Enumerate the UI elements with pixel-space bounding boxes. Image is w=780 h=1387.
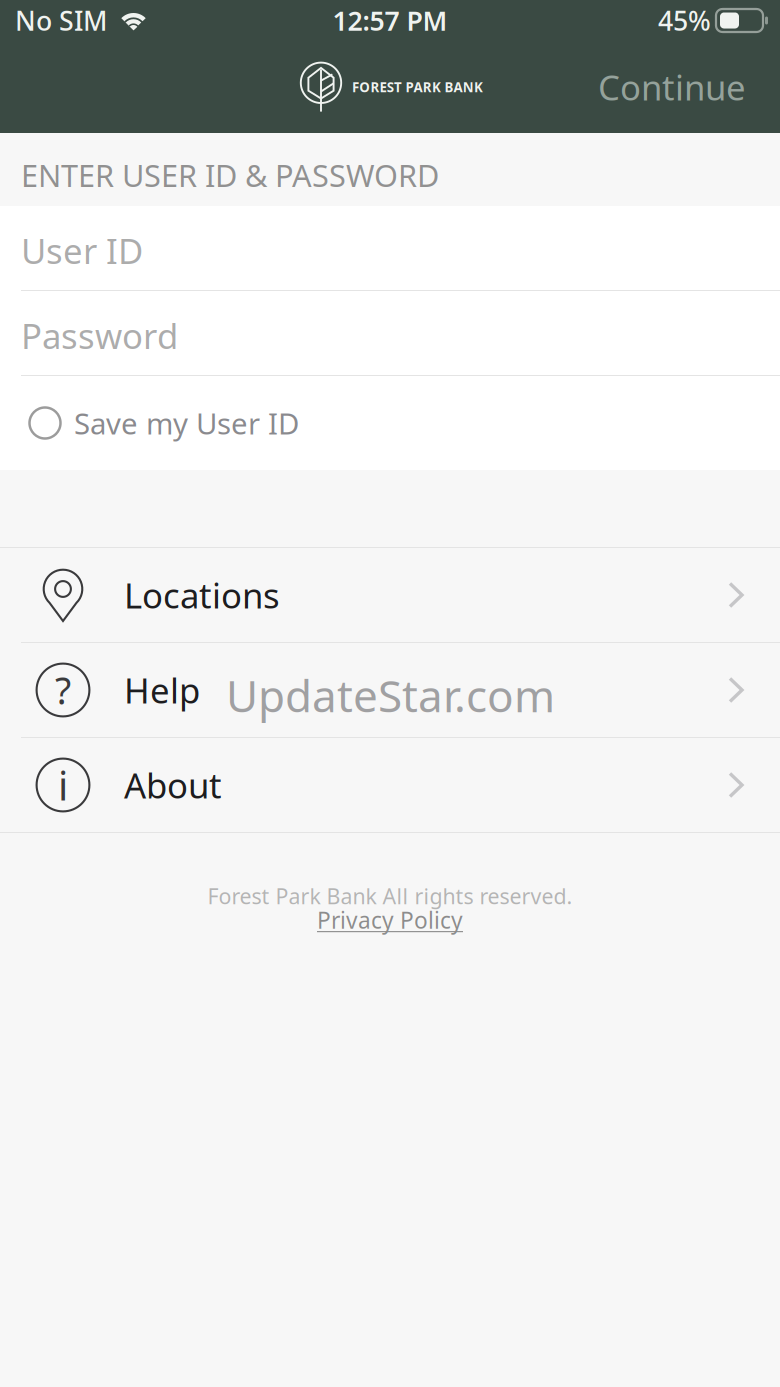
button[interactable]: i [0, 738, 780, 832]
button[interactable]: Privacy Policy [307, 906, 473, 934]
button[interactable]: Continue [572, 41, 780, 133]
staticText: Privacy Policy [317, 905, 463, 935]
staticText: About [124, 762, 222, 808]
button[interactable]: Locations [0, 548, 780, 642]
staticText: ? [55, 665, 71, 715]
staticText: FOREST PARK BANK [352, 78, 483, 96]
staticText: User ID [21, 227, 143, 273]
staticText: i [58, 758, 68, 811]
button[interactable]: Password [0, 291, 780, 375]
staticText: Locations [124, 572, 280, 618]
staticText: UpdateStar.com [226, 666, 555, 724]
staticText: Help [124, 667, 200, 713]
staticText: Password [21, 312, 178, 358]
button[interactable]: Save my User ID [0, 376, 780, 470]
staticText: 45% [658, 3, 711, 38]
button[interactable]: ? [0, 643, 780, 737]
staticText: Save my User ID [74, 403, 299, 442]
staticText: Forest Park Bank All rights reserved. [207, 882, 572, 910]
button[interactable]: User ID [0, 206, 780, 290]
staticText: ENTER USER ID & PASSWORD [21, 155, 439, 195]
staticText: 12:57 PM [332, 3, 447, 38]
staticText: Continue [598, 64, 746, 110]
staticText: No SIM [15, 3, 107, 38]
